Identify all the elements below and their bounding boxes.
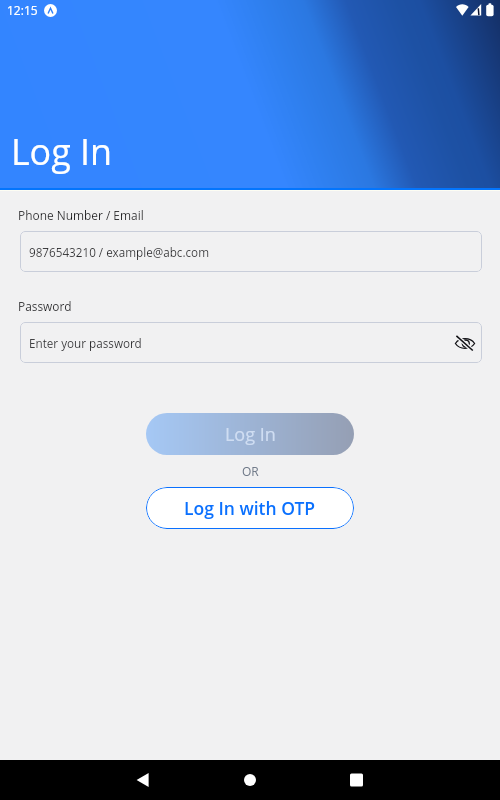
staticText: Log In — [11, 127, 113, 176]
button[interactable]: Log In with OTP — [146, 487, 354, 529]
button[interactable]: Recent apps — [326, 760, 386, 800]
staticText: 12:15 — [7, 2, 38, 18]
button[interactable]: Log In — [146, 413, 354, 455]
staticText: Log In with OTP — [184, 496, 316, 520]
button[interactable]: 9876543210 / example@abc.com — [20, 231, 482, 272]
button[interactable]: Home — [220, 760, 280, 800]
button[interactable]: Enter your password — [20, 322, 482, 363]
staticText: Password — [18, 298, 72, 314]
staticText: OR — [242, 463, 259, 479]
staticText: Enter your password — [29, 335, 142, 351]
button[interactable]: Back — [113, 760, 173, 800]
staticText: Phone Number / Email — [18, 207, 144, 223]
staticText: Log In — [225, 422, 276, 447]
staticText: 9876543210 / example@abc.com — [29, 244, 210, 260]
button[interactable]: Show password — [451, 330, 477, 356]
